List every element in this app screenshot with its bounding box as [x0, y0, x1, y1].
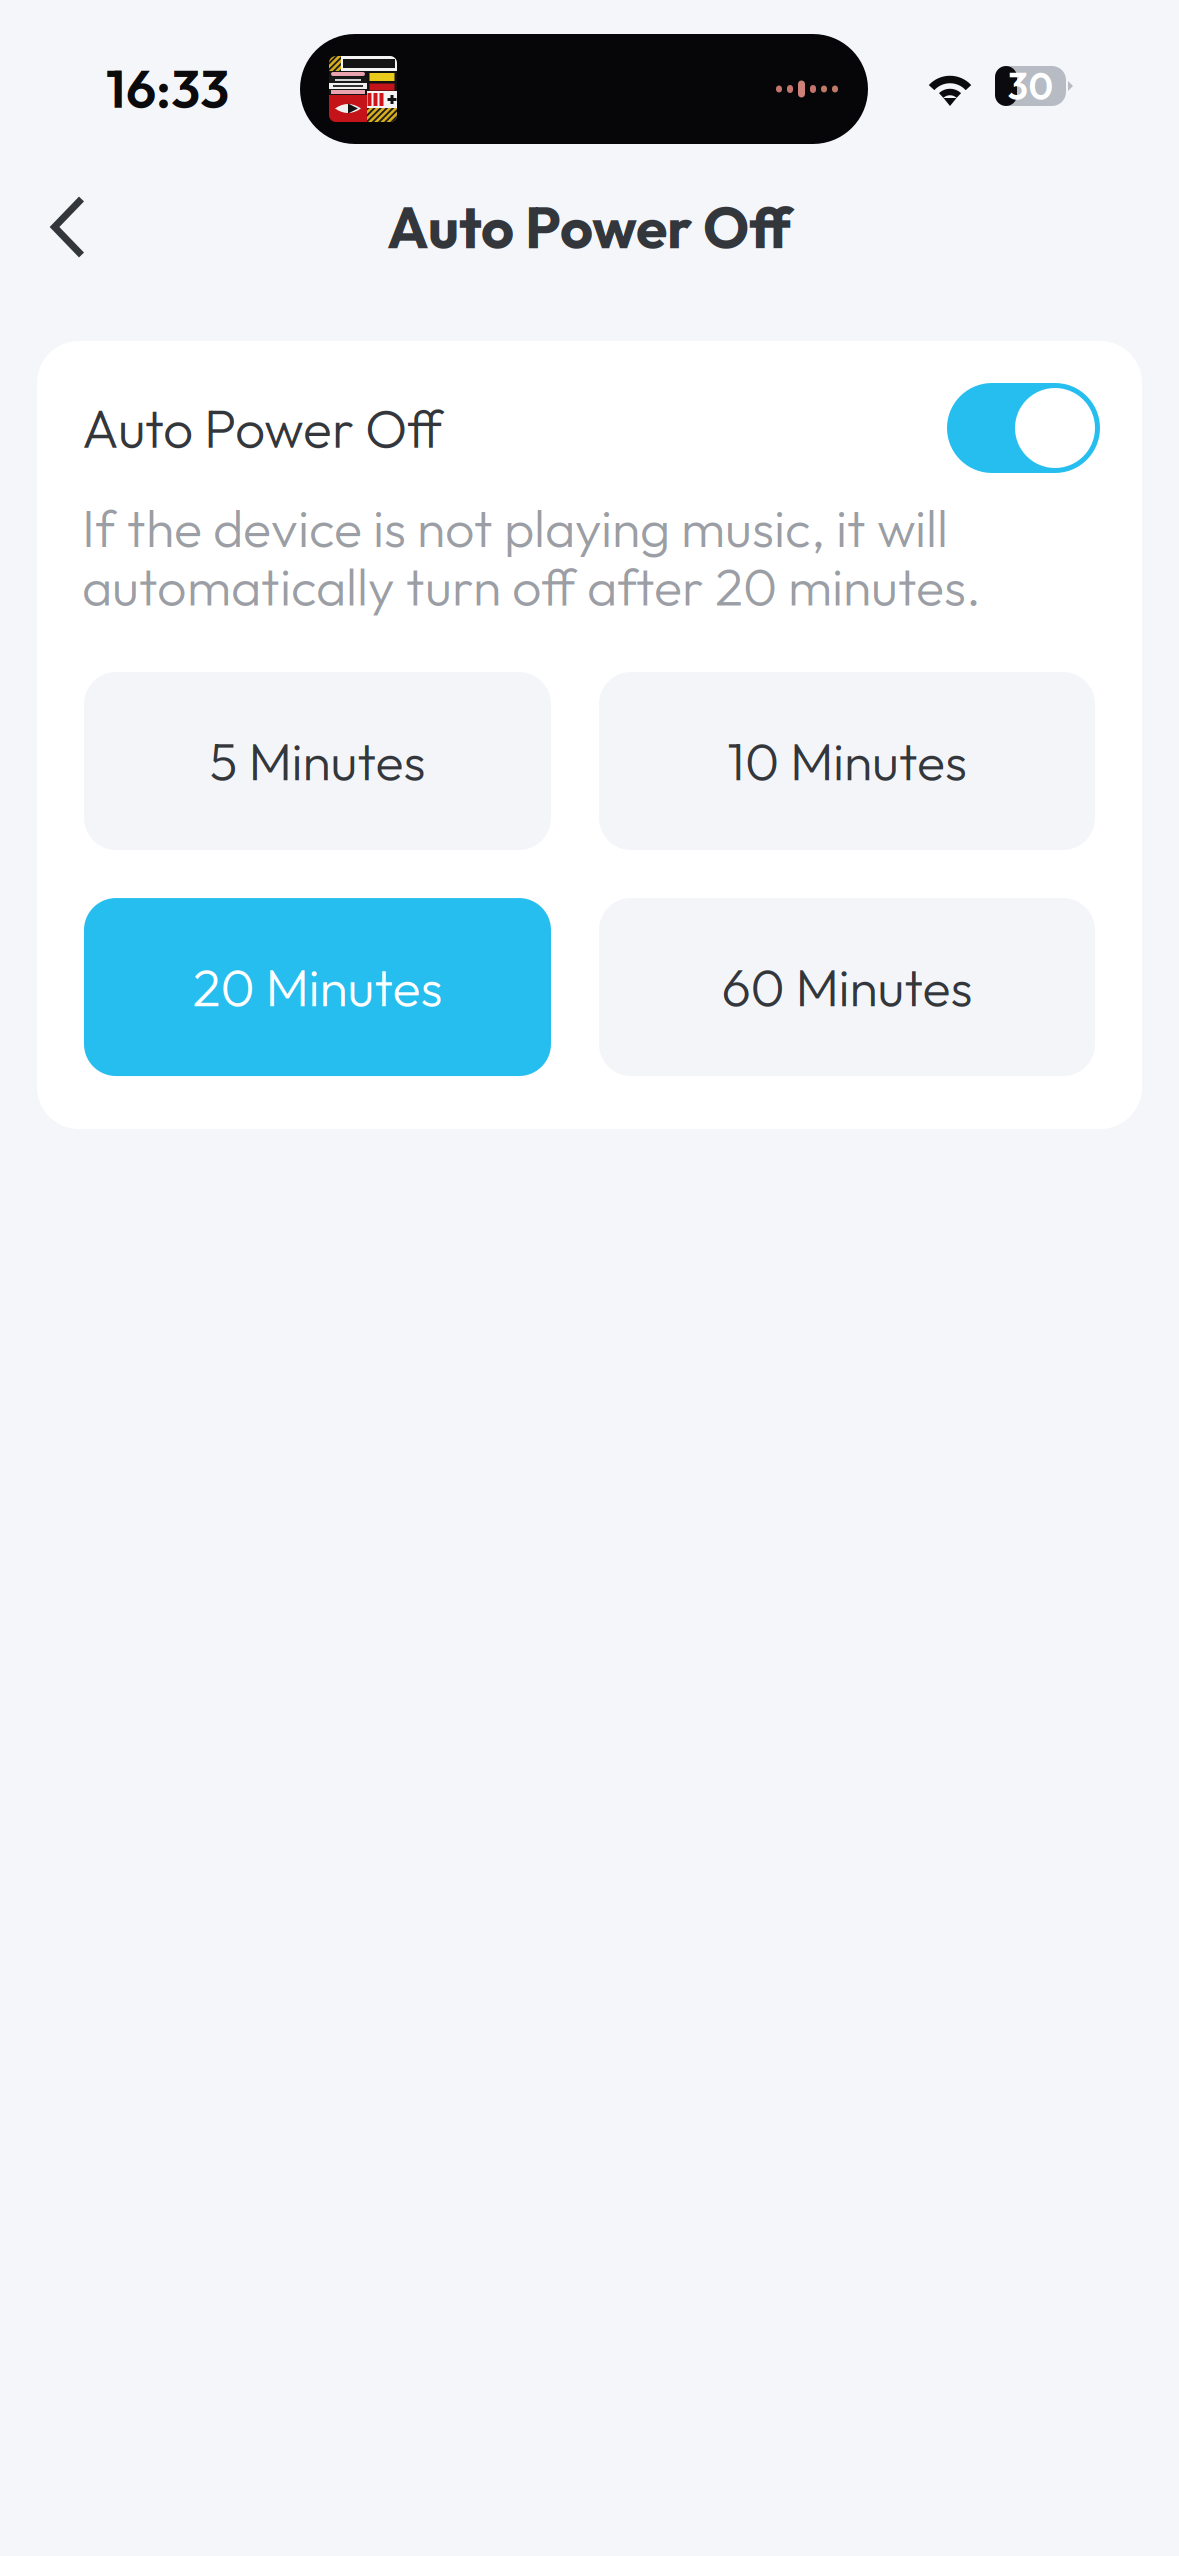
staticText: 20 Minutes — [192, 954, 442, 1020]
staticText: 60 Minutes — [721, 954, 972, 1020]
button[interactable]: Auto Power Off toggle — [947, 383, 1100, 473]
staticText: 5 Minutes — [209, 728, 425, 794]
staticText: Auto Power Off — [82, 394, 443, 462]
staticText: 30 — [1007, 62, 1053, 109]
staticText: If the device is not playing music, it w… — [82, 495, 981, 619]
staticText: 10 Minutes — [727, 728, 967, 794]
button[interactable]: Back — [16, 175, 120, 279]
button[interactable]: 60 Minutes — [599, 898, 1095, 1076]
staticText: 16:33 — [106, 54, 229, 122]
button[interactable]: 20 Minutes — [84, 898, 551, 1076]
button[interactable]: 10 Minutes — [599, 672, 1095, 850]
staticText: Auto Power Off — [387, 191, 792, 263]
button[interactable]: 5 Minutes — [84, 672, 551, 850]
